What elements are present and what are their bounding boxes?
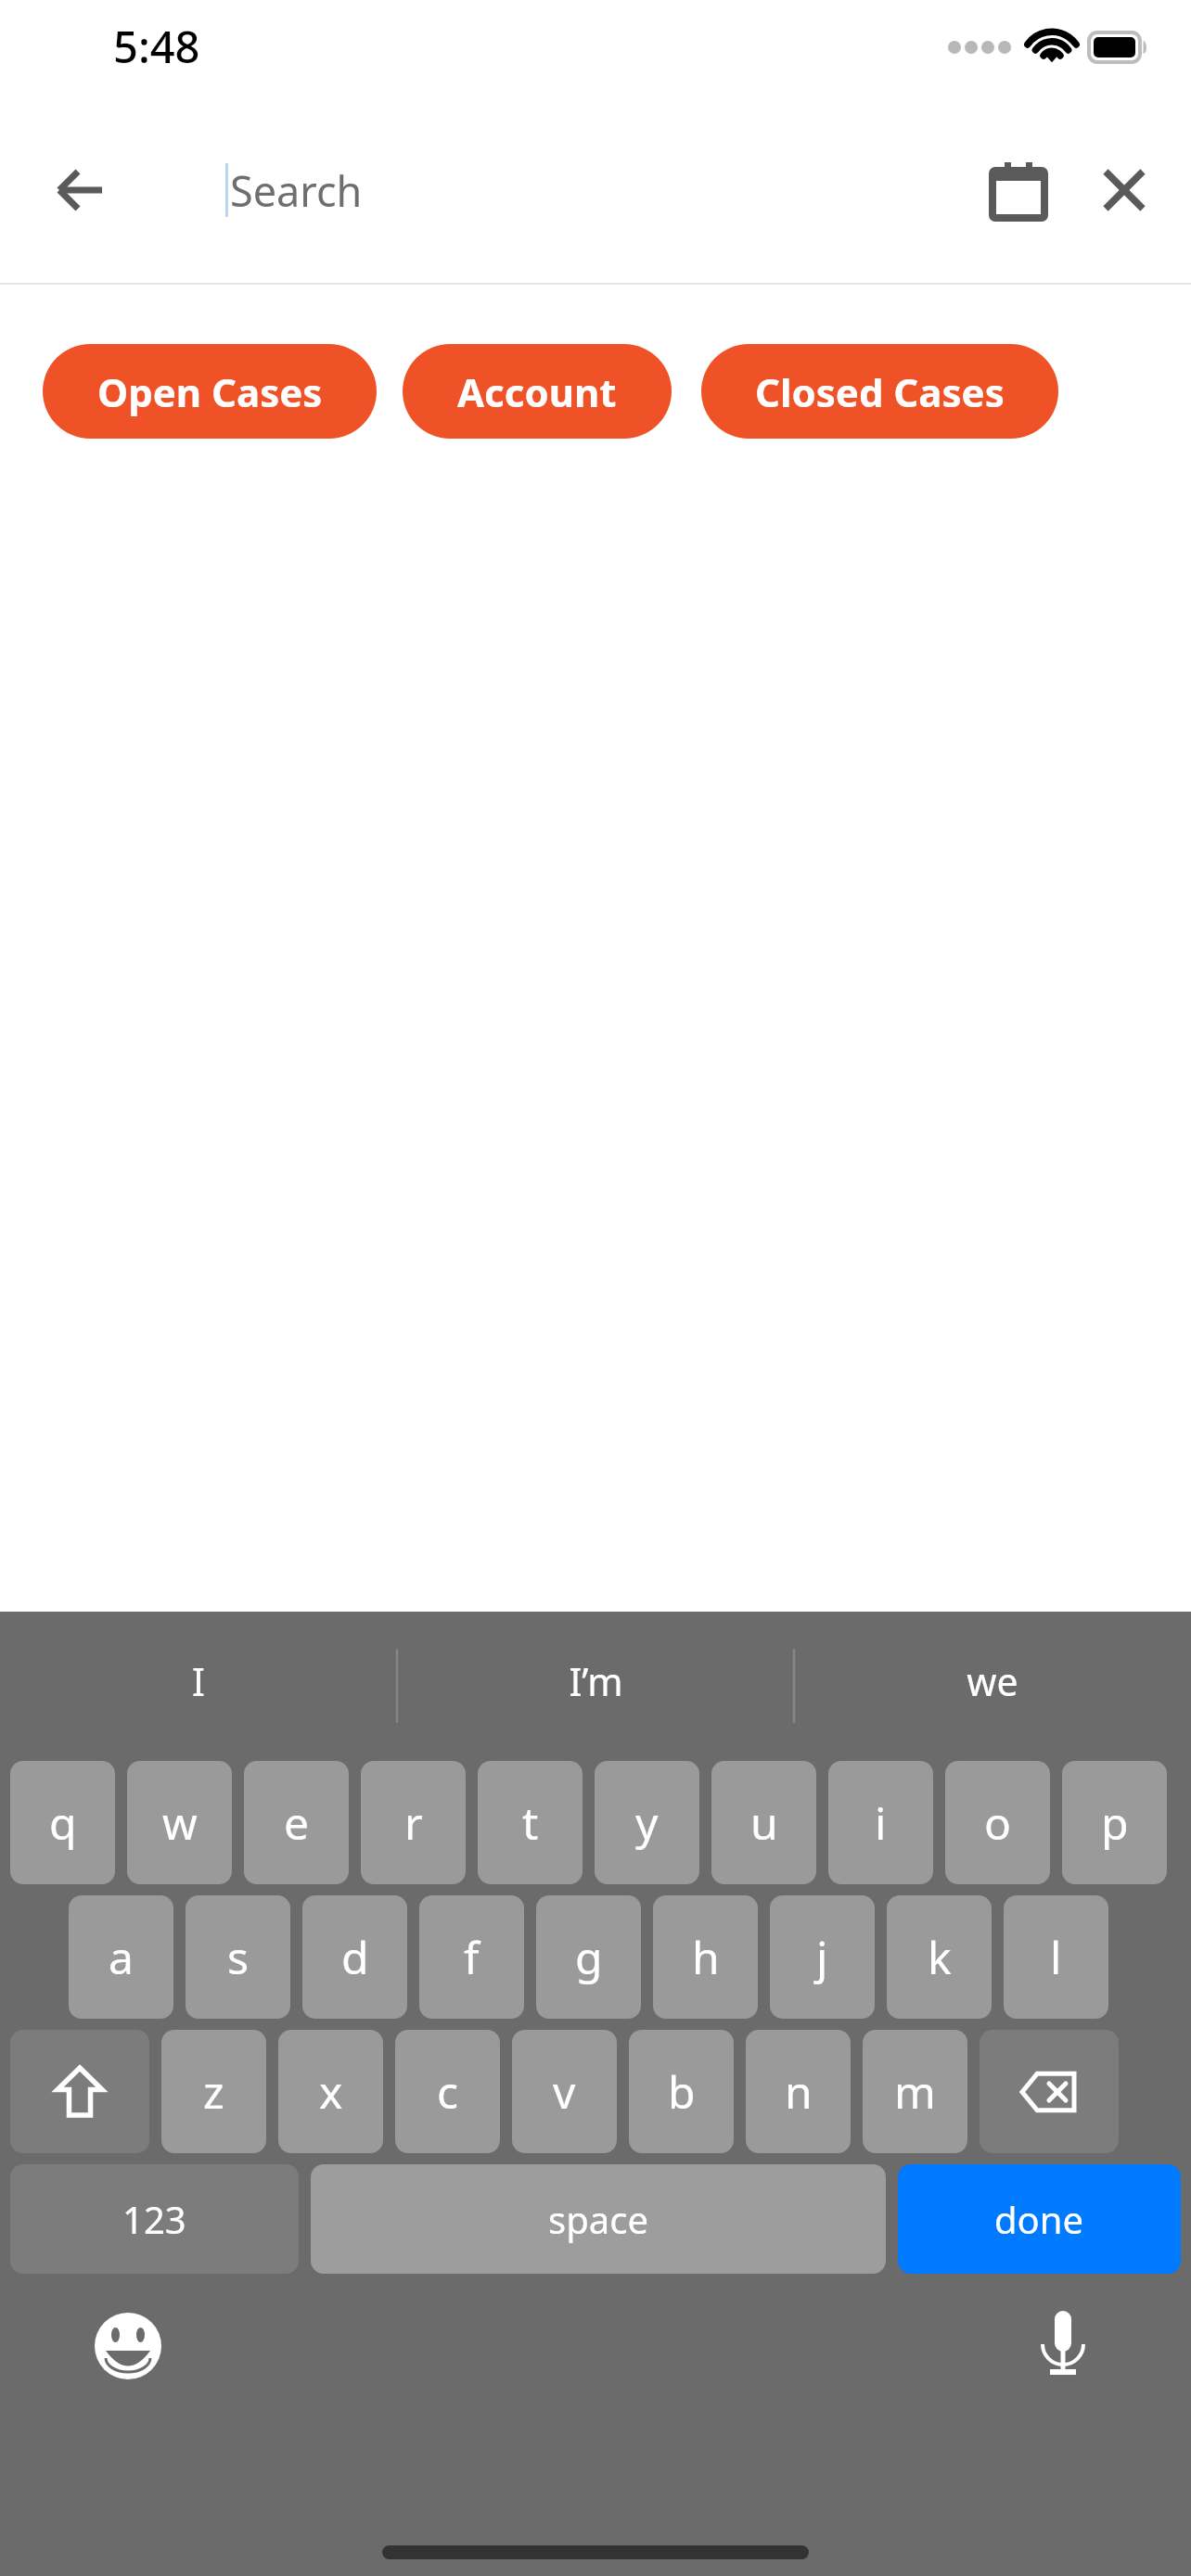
- button[interactable]: Emoji: [83, 2302, 173, 2391]
- button[interactable]: m: [863, 2030, 967, 2153]
- button[interactable]: p: [1062, 1761, 1167, 1884]
- button[interactable]: d: [302, 1895, 407, 2019]
- button[interactable]: Calendar: [976, 147, 1061, 233]
- button[interactable]: I: [0, 1612, 397, 1751]
- staticText: 123: [122, 2194, 186, 2244]
- staticText: v: [553, 2061, 576, 2122]
- staticText: we: [967, 1655, 1018, 1707]
- button[interactable]: i: [828, 1761, 933, 1884]
- button[interactable]: b: [629, 2030, 734, 2153]
- staticText: c: [437, 2061, 459, 2122]
- button[interactable]: q: [10, 1761, 115, 1884]
- staticText: z: [203, 2061, 224, 2122]
- staticText: w: [162, 1792, 198, 1853]
- button[interactable]: g: [536, 1895, 641, 2019]
- button[interactable]: space: [311, 2164, 886, 2274]
- button[interactable]: Back: [37, 147, 122, 233]
- staticText: a: [109, 1927, 134, 1987]
- button[interactable]: k: [887, 1895, 992, 2019]
- button[interactable]: w: [127, 1761, 232, 1884]
- button[interactable]: a: [69, 1895, 173, 2019]
- button[interactable]: z: [161, 2030, 266, 2153]
- staticText: 5:48: [113, 17, 200, 76]
- staticText: m: [894, 2061, 936, 2122]
- button[interactable]: h: [653, 1895, 758, 2019]
- staticText: s: [227, 1927, 249, 1987]
- staticText: x: [319, 2061, 343, 2122]
- button[interactable]: u: [711, 1761, 816, 1884]
- staticText: k: [928, 1927, 952, 1987]
- button[interactable]: c: [395, 2030, 500, 2153]
- button[interactable]: o: [945, 1761, 1050, 1884]
- button[interactable]: v: [512, 2030, 617, 2153]
- button[interactable]: e: [244, 1761, 349, 1884]
- staticText: done: [994, 2194, 1084, 2244]
- button[interactable]: Voice input: [1018, 2300, 1108, 2389]
- staticText: t: [522, 1792, 539, 1853]
- button[interactable]: Account: [403, 344, 672, 439]
- staticText: f: [464, 1927, 480, 1987]
- staticText: o: [984, 1792, 1012, 1853]
- button[interactable]: Open Cases: [43, 344, 377, 439]
- button[interactable]: x: [278, 2030, 383, 2153]
- staticText: Search: [230, 162, 363, 219]
- button[interactable]: f: [419, 1895, 524, 2019]
- staticText: Open Cases: [97, 365, 323, 418]
- staticText: u: [750, 1792, 778, 1853]
- staticText: q: [49, 1792, 77, 1853]
- button[interactable]: s: [186, 1895, 290, 2019]
- button[interactable]: y: [595, 1761, 699, 1884]
- staticText: l: [1050, 1927, 1062, 1987]
- staticText: space: [548, 2194, 648, 2244]
- button[interactable]: r: [361, 1761, 466, 1884]
- button[interactable]: j: [770, 1895, 875, 2019]
- staticText: j: [816, 1927, 828, 1987]
- staticText: p: [1101, 1792, 1129, 1853]
- staticText: y: [635, 1792, 659, 1853]
- staticText: g: [575, 1927, 603, 1987]
- button[interactable]: Backspace: [980, 2030, 1119, 2153]
- staticText: Account: [457, 365, 617, 418]
- button[interactable]: Closed Cases: [701, 344, 1058, 439]
- button[interactable]: l: [1004, 1895, 1108, 2019]
- staticText: r: [404, 1792, 423, 1853]
- button[interactable]: t: [478, 1761, 583, 1884]
- button[interactable]: Close: [1082, 147, 1167, 233]
- button[interactable]: Shift: [10, 2030, 149, 2153]
- staticText: d: [341, 1927, 369, 1987]
- staticText: i: [875, 1792, 887, 1853]
- staticText: I’m: [569, 1655, 623, 1707]
- button[interactable]: 123: [10, 2164, 299, 2274]
- staticText: h: [692, 1927, 720, 1987]
- button[interactable]: n: [746, 2030, 851, 2153]
- staticText: e: [284, 1792, 310, 1853]
- button[interactable]: I’m: [397, 1612, 794, 1751]
- staticText: I: [192, 1655, 205, 1707]
- button[interactable]: done: [898, 2164, 1181, 2274]
- staticText: Closed Cases: [755, 365, 1005, 418]
- button[interactable]: we: [794, 1612, 1191, 1751]
- staticText: n: [785, 2061, 813, 2122]
- staticText: b: [668, 2061, 696, 2122]
